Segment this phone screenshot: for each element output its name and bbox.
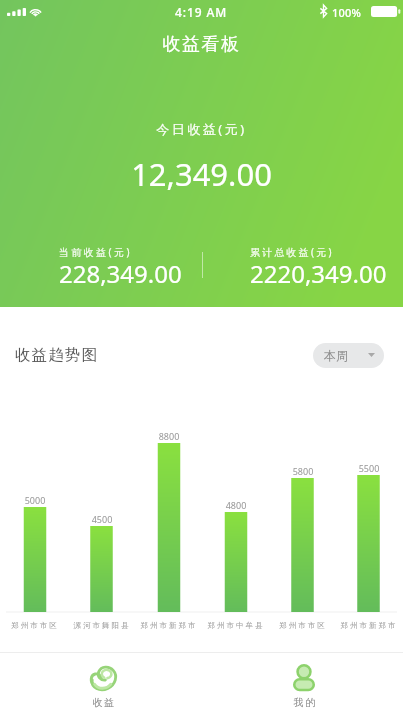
staticText: 5000 — [10, 494, 60, 506]
staticText: 5500 — [344, 462, 394, 474]
button[interactable]: 收益 — [53, 653, 153, 712]
staticText: 郑州市市区 — [269, 621, 337, 630]
staticText: 当前收益(元) — [59, 245, 132, 259]
staticText: 5800 — [278, 465, 328, 477]
staticText: 郑州市新郑市 — [135, 621, 203, 630]
staticText: 收益趋势图 — [15, 345, 99, 365]
staticText: 我的 — [293, 696, 316, 709]
staticText: 12,349.00 — [0, 153, 403, 195]
button[interactable]: 我的 — [254, 653, 354, 712]
staticText: 漯河市舞阳县 — [68, 621, 136, 630]
button[interactable]: 本周 — [313, 343, 384, 368]
staticText: 收益看板 — [0, 33, 403, 56]
staticText: 郑州市市区 — [1, 621, 69, 630]
staticText: 累计总收益(元) — [250, 245, 334, 259]
staticText: 2220,349.00 — [250, 257, 387, 290]
staticText: 本周 — [324, 348, 348, 363]
staticText: 4500 — [77, 513, 127, 525]
staticText: 收益 — [92, 696, 115, 709]
staticText: 4:19 AM — [175, 4, 228, 20]
staticText: 8800 — [144, 430, 194, 442]
staticText: 228,349.00 — [59, 257, 182, 290]
staticText: 4800 — [211, 499, 261, 511]
staticText: 郑州市新郑市 — [335, 621, 403, 630]
staticText: 郑州市中牟县 — [202, 621, 270, 630]
staticText: 今日收益(元) — [0, 120, 403, 138]
staticText: 100% — [332, 5, 362, 20]
